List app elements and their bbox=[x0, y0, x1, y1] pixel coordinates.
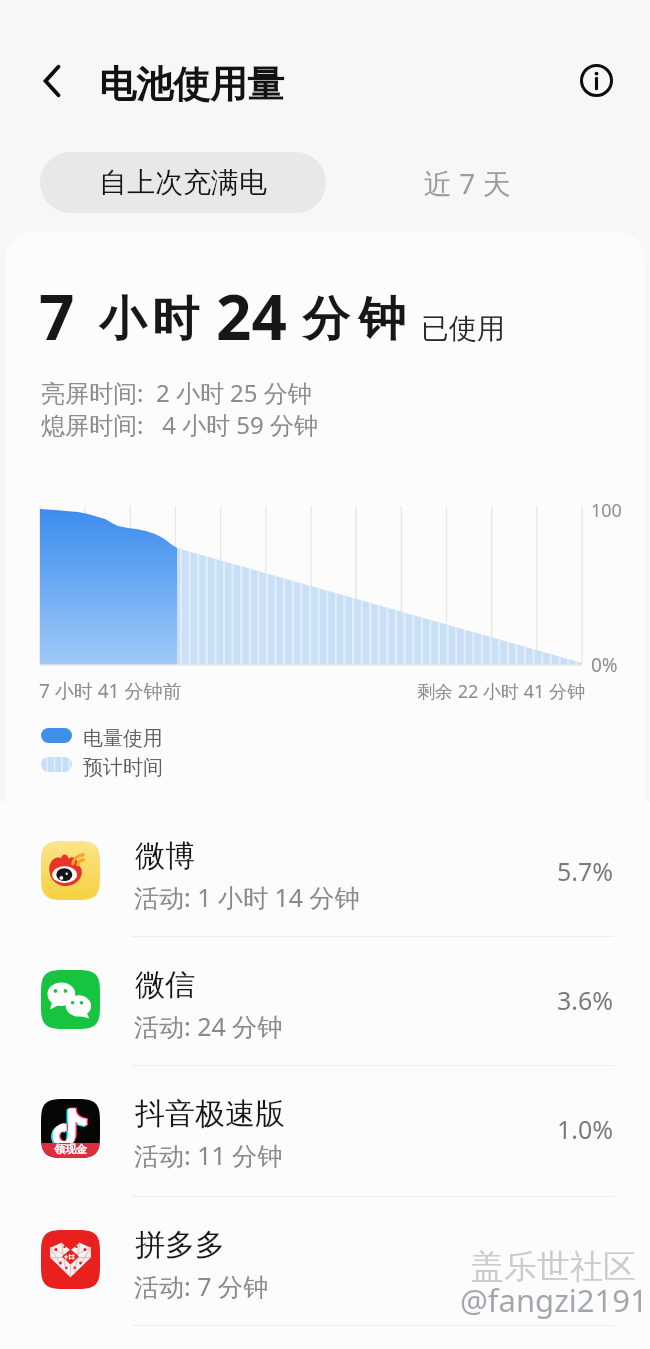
staticText: 1.0% bbox=[557, 1112, 614, 1146]
staticText: 活动: 1 小时 14 分钟 bbox=[134, 880, 360, 914]
staticText: 分钟 bbox=[298, 290, 410, 349]
staticText: 亮屏时间: 2 小时 25 分钟 bbox=[41, 376, 312, 409]
button[interactable]: 微信 bbox=[0, 936, 650, 1065]
staticText: 24 bbox=[216, 274, 287, 358]
staticText: 电量使用 bbox=[83, 726, 163, 751]
button[interactable]: Back bbox=[28, 57, 76, 105]
staticText: 领现金 bbox=[54, 1142, 87, 1156]
staticText: 5.7% bbox=[557, 854, 614, 888]
staticText: 活动: 24 分钟 bbox=[134, 1009, 283, 1043]
staticText: @fangzi2191 bbox=[460, 1279, 648, 1321]
button[interactable]: 拼多多 bbox=[0, 1196, 650, 1325]
staticText: 预计时间 bbox=[83, 755, 163, 780]
button[interactable]: 近 7 天 bbox=[390, 152, 545, 213]
staticText: 100 bbox=[591, 498, 622, 523]
button[interactable]: 领现金 bbox=[0, 1065, 650, 1194]
staticText: 活动: 11 分钟 bbox=[134, 1138, 283, 1172]
staticText: 微信 bbox=[135, 966, 195, 1004]
staticText: 剩余 22 小时 41 分钟 bbox=[417, 679, 585, 704]
staticText: 自上次充满电 bbox=[99, 165, 267, 200]
staticText: 0% bbox=[591, 652, 618, 678]
staticText: 熄屏时间: 4 小时 59 分钟 bbox=[41, 408, 319, 441]
staticText: 已使用 bbox=[421, 311, 505, 346]
staticText: 抖音极速版 bbox=[135, 1095, 285, 1133]
staticText: 活动: 7 分钟 bbox=[134, 1269, 269, 1303]
staticText: 盖乐世社区 bbox=[471, 1246, 636, 1288]
staticText: 微博 bbox=[135, 837, 195, 875]
staticText: 3.6% bbox=[557, 983, 614, 1017]
staticText: 电池使用量 bbox=[99, 61, 284, 108]
staticText: 小时 bbox=[96, 290, 202, 349]
staticText: 7 bbox=[39, 274, 75, 358]
staticText: 拼多多 bbox=[135, 1226, 225, 1264]
button[interactable]: Information bbox=[571, 55, 621, 105]
staticText: 7 小时 41 分钟前 bbox=[39, 678, 182, 704]
staticText: 近 7 天 bbox=[424, 164, 511, 202]
button[interactable]: 微博 bbox=[0, 807, 650, 936]
button[interactable]: 自上次充满电 bbox=[40, 152, 326, 213]
